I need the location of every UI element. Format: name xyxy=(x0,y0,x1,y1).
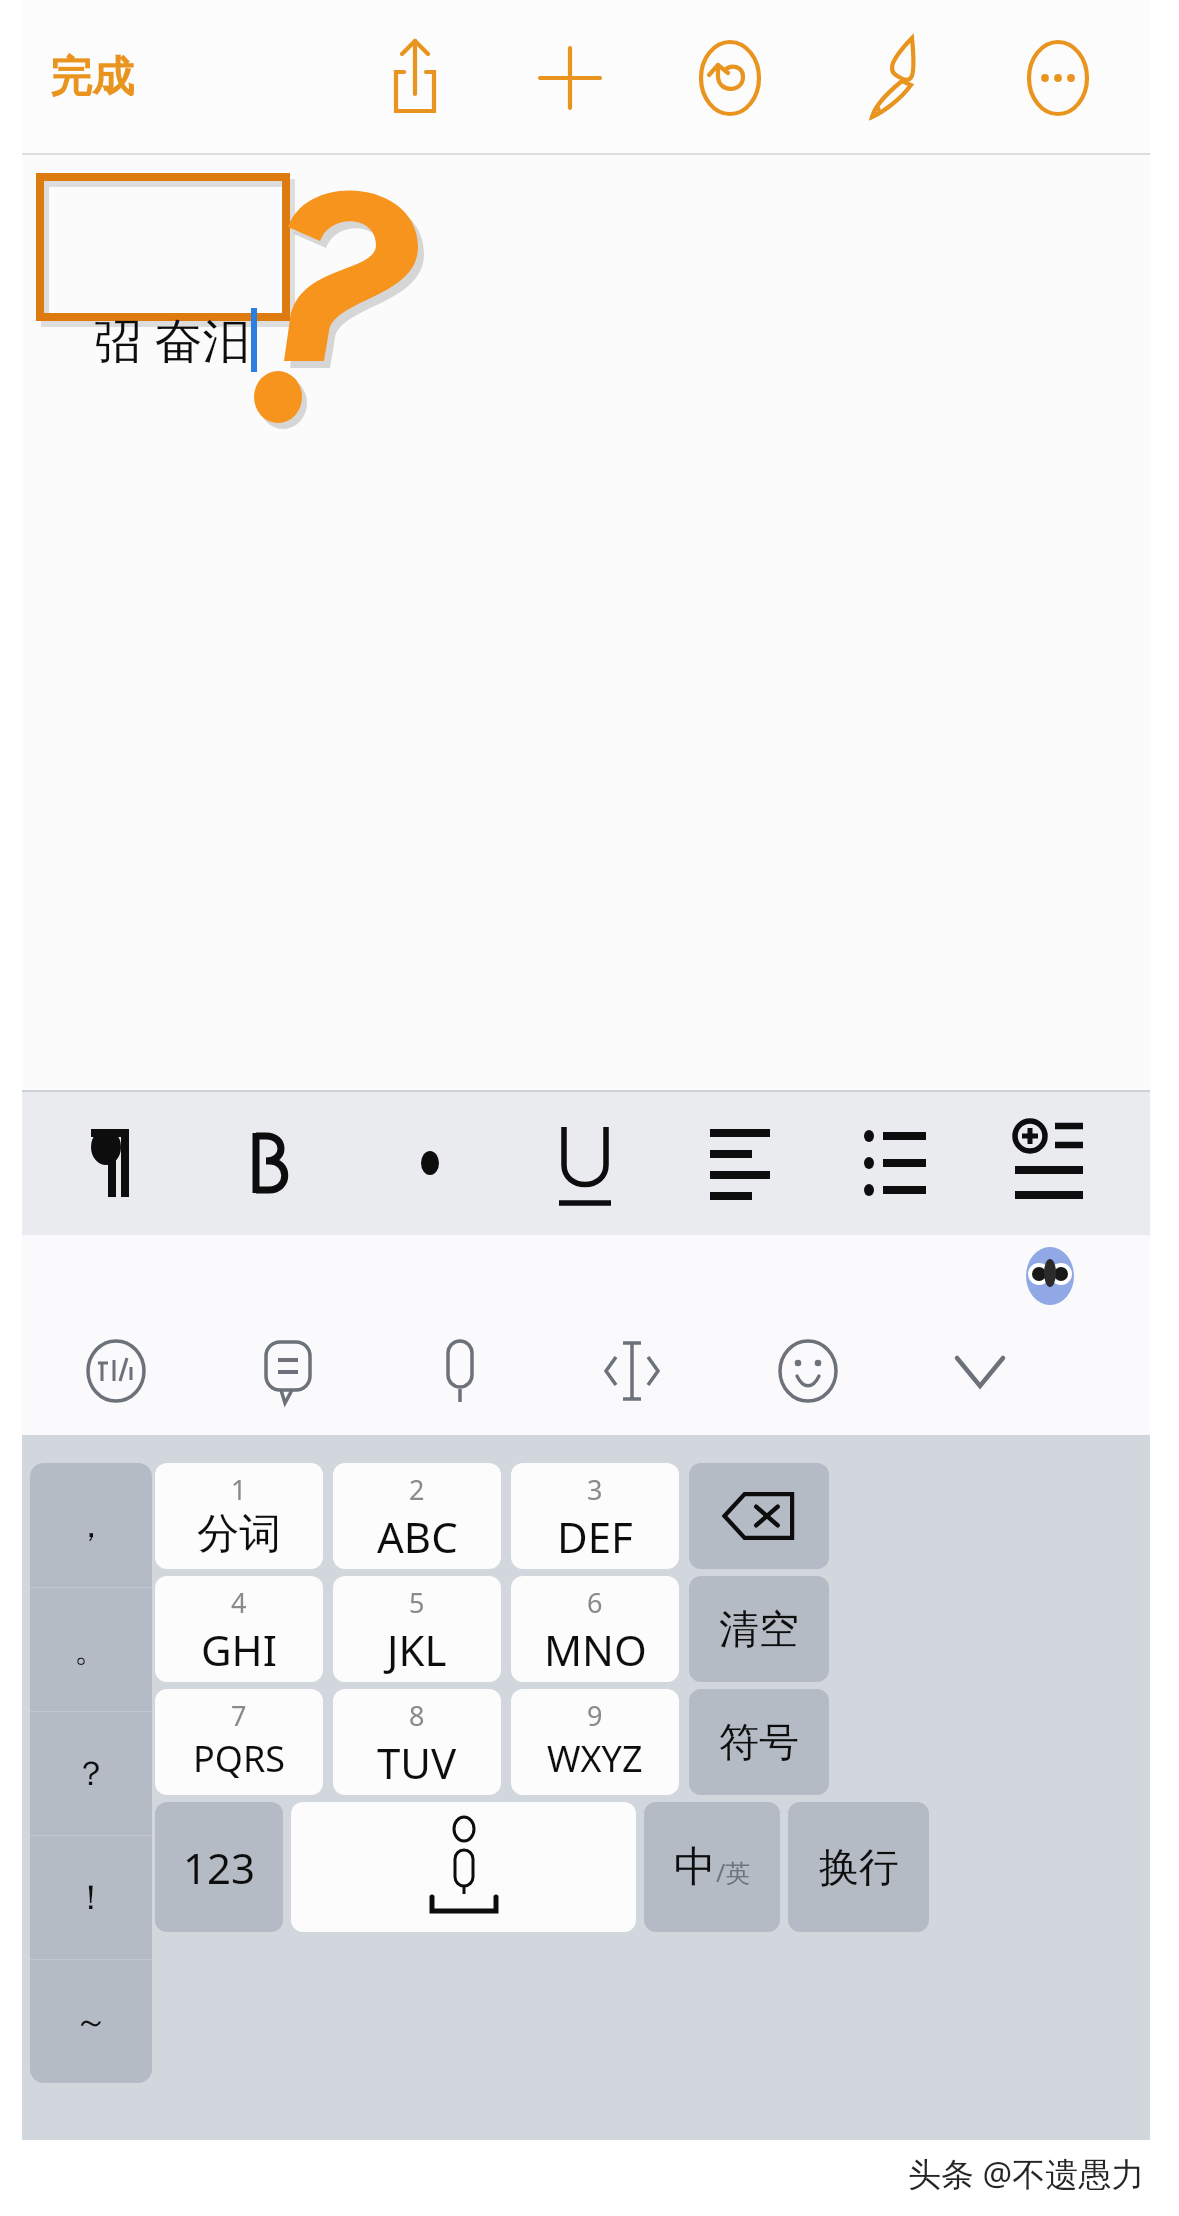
button[interactable]: Emoji xyxy=(760,1323,856,1419)
button[interactable]: Add list item xyxy=(995,1108,1105,1218)
button[interactable]: Underline xyxy=(530,1108,640,1218)
staticText: 中 xyxy=(674,1841,716,1894)
staticText: ， xyxy=(74,1504,108,1547)
button[interactable]: Align left xyxy=(685,1108,795,1218)
button[interactable]: Move cursor xyxy=(584,1323,680,1419)
staticText: 3 xyxy=(587,1471,603,1508)
button[interactable]: 符号 xyxy=(689,1689,829,1795)
staticText: 9 xyxy=(587,1697,603,1734)
button[interactable]: 。 xyxy=(30,1587,152,1711)
button[interactable]: Bold xyxy=(215,1108,325,1218)
button[interactable]: 清空 xyxy=(689,1576,829,1682)
staticText: 换行 xyxy=(819,1842,899,1892)
staticText: 分词 xyxy=(197,1508,281,1561)
button[interactable]: Backspace xyxy=(689,1463,829,1569)
button[interactable]: Quick phrases xyxy=(240,1323,336,1419)
button[interactable]: Markup xyxy=(843,26,947,130)
staticText: 5 xyxy=(409,1584,425,1621)
staticText: 。 xyxy=(74,1628,108,1671)
staticText: 弨 奋汨 xyxy=(94,307,251,373)
button[interactable]: ～ xyxy=(30,1959,152,2083)
staticText: DEF xyxy=(557,1508,633,1565)
button[interactable]: ！ xyxy=(30,1835,152,1959)
staticText: ～ xyxy=(74,2000,108,2043)
staticText: TUV xyxy=(377,1734,457,1791)
button[interactable]: Note body xyxy=(22,155,1150,1090)
staticText: 2 xyxy=(409,1471,425,1508)
button[interactable]: 123 xyxy=(155,1802,283,1932)
staticText: 头条 @不遗愚力 xyxy=(908,2151,1145,2196)
staticText: ？ xyxy=(74,1752,108,1795)
button[interactable]: Voice input xyxy=(412,1323,508,1419)
button[interactable]: 完成 xyxy=(40,41,144,114)
button[interactable]: 5 xyxy=(333,1576,501,1682)
staticText: 完成 xyxy=(50,51,134,104)
staticText: GHI xyxy=(201,1621,277,1678)
button[interactable]: 2 xyxy=(333,1463,501,1569)
button[interactable]: 7 xyxy=(155,1689,323,1795)
button[interactable]: 4 xyxy=(155,1576,323,1682)
staticText: MNO xyxy=(544,1621,647,1678)
button[interactable]: 8 xyxy=(333,1689,501,1795)
button[interactable]: Undo xyxy=(678,26,782,130)
button[interactable]: 6 xyxy=(511,1576,679,1682)
button[interactable]: 9 xyxy=(511,1689,679,1795)
staticText: PQRS xyxy=(193,1734,286,1783)
staticText: ABC xyxy=(377,1508,458,1565)
button[interactable]: 3 xyxy=(511,1463,679,1569)
button[interactable]: More xyxy=(1006,26,1110,130)
button[interactable]: Hide keyboard xyxy=(932,1323,1028,1419)
button[interactable]: Bulleted list xyxy=(840,1108,950,1218)
staticText: 4 xyxy=(231,1584,247,1621)
staticText: 6 xyxy=(587,1584,603,1621)
button[interactable]: 1 xyxy=(155,1463,323,1569)
button[interactable]: 换行 xyxy=(788,1802,929,1932)
button[interactable]: ？ xyxy=(30,1711,152,1835)
staticText: 7 xyxy=(231,1697,247,1734)
button[interactable]: Share xyxy=(363,26,467,130)
staticText: 123 xyxy=(183,1839,256,1896)
staticText: JKL xyxy=(387,1621,447,1678)
button[interactable]: Add xyxy=(518,26,622,130)
button[interactable]: Bullet xyxy=(375,1108,485,1218)
staticText: /英 xyxy=(716,1855,751,1889)
staticText: ！ xyxy=(74,1876,108,1919)
staticText: 清空 xyxy=(719,1604,799,1654)
button[interactable]: ， xyxy=(30,1463,152,1587)
button[interactable]: Switch input method xyxy=(68,1323,164,1419)
staticText: 符号 xyxy=(719,1717,799,1767)
staticText: 8 xyxy=(409,1697,425,1734)
button[interactable]: Paragraph style xyxy=(60,1108,170,1218)
staticText: 1 xyxy=(231,1471,247,1508)
button[interactable]: Space and voice input xyxy=(291,1802,636,1932)
button[interactable]: 中 xyxy=(644,1802,780,1932)
staticText: WXYZ xyxy=(547,1734,643,1783)
